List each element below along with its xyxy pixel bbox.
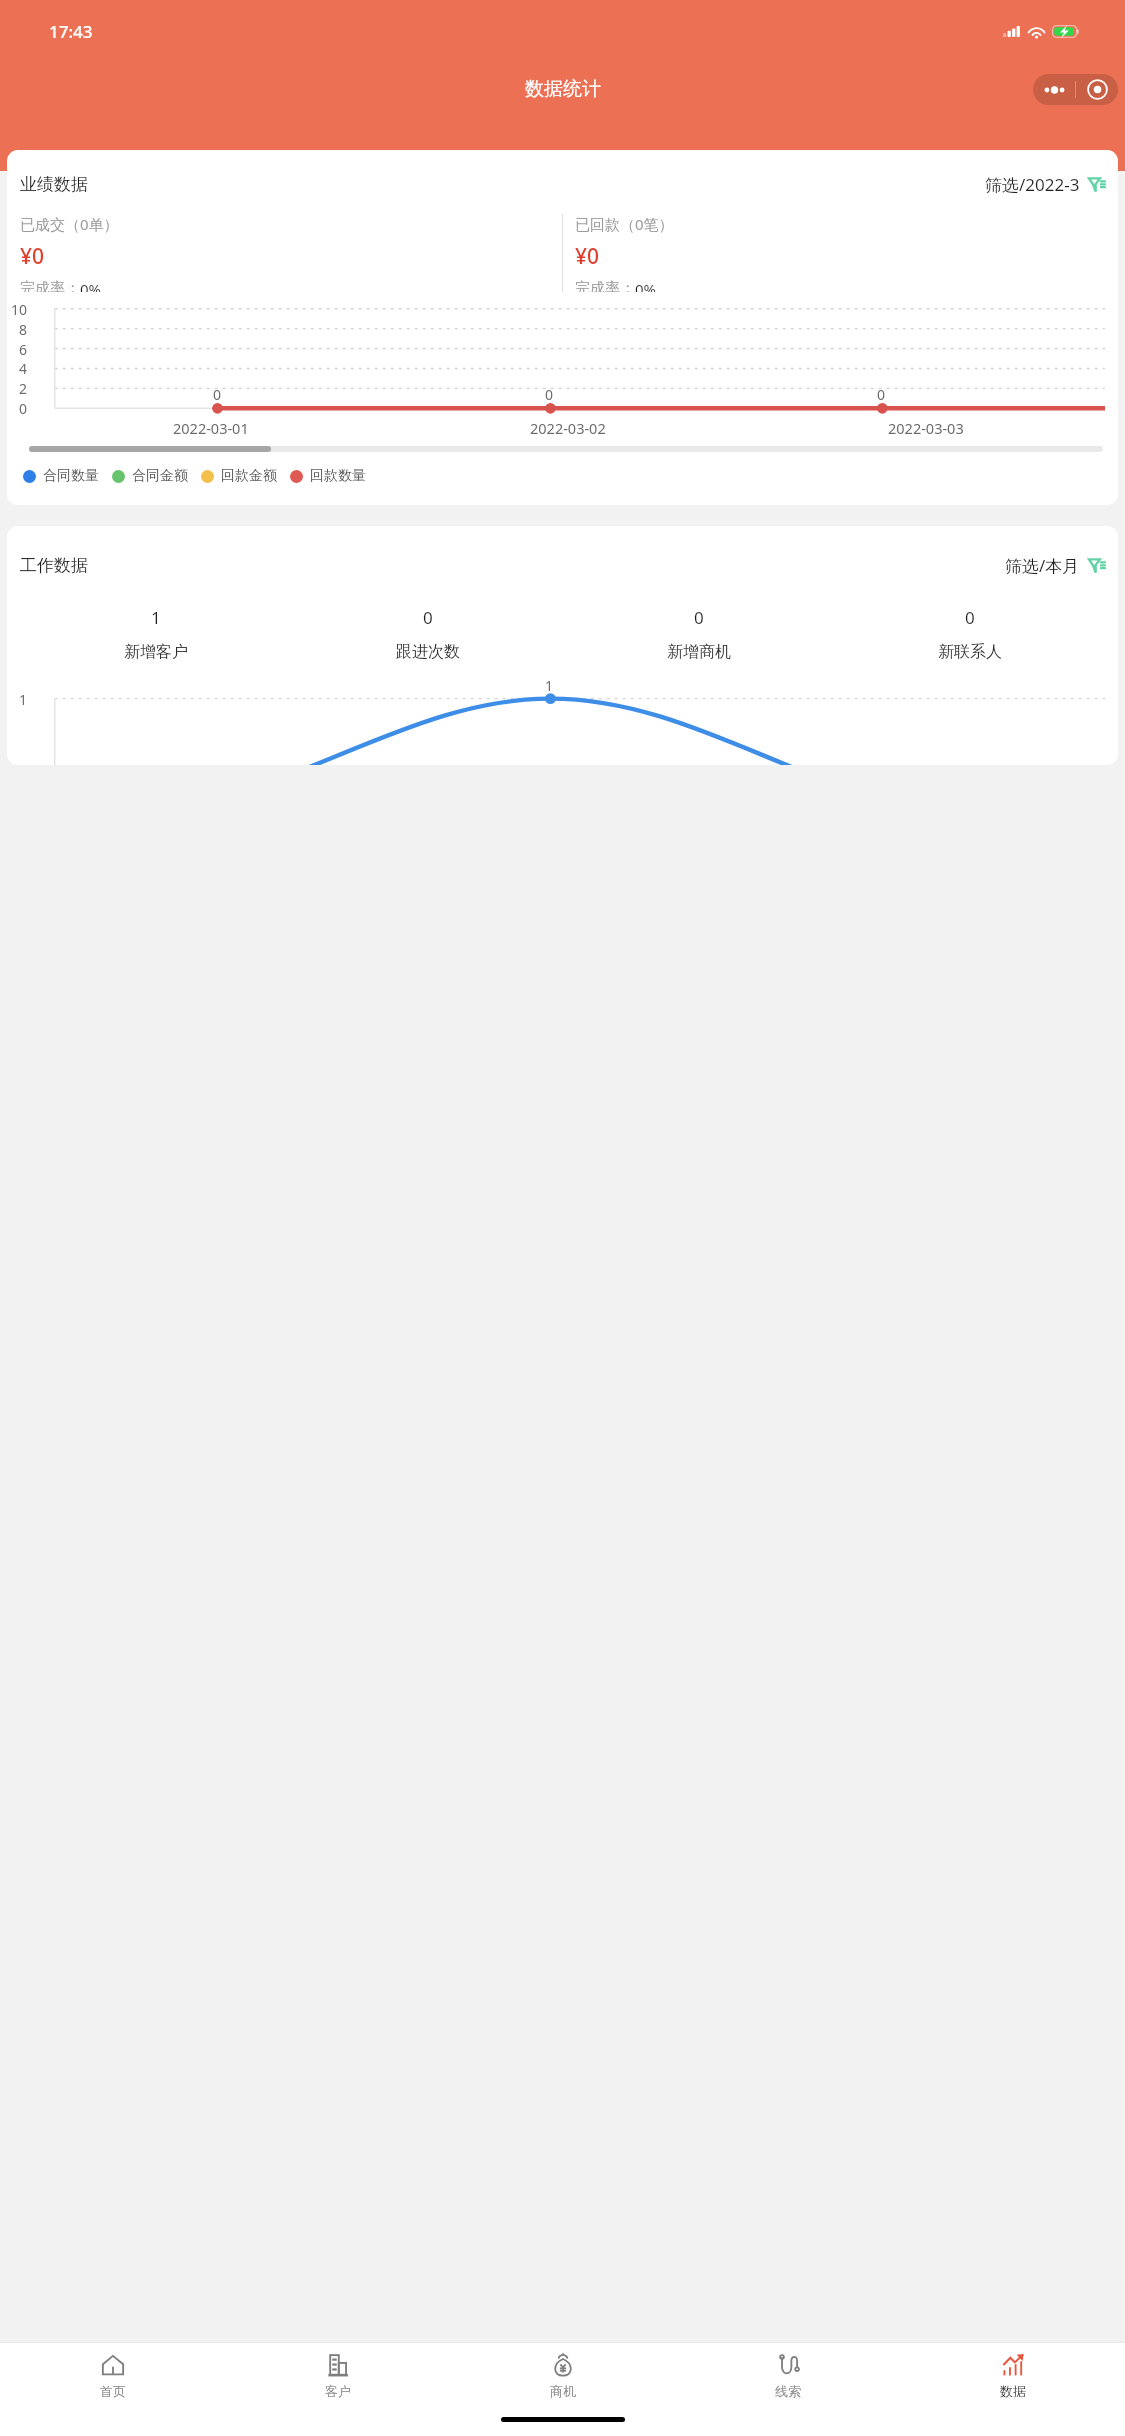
staticText: 数据 bbox=[1000, 2383, 1026, 2399]
staticText: 新联系人 bbox=[938, 642, 1002, 662]
button[interactable]: 线索 bbox=[675, 2343, 900, 2406]
button[interactable]: 首页 bbox=[0, 2343, 225, 2406]
staticText: 新增商机 bbox=[667, 642, 731, 662]
staticText: 完成率： bbox=[575, 279, 635, 292]
staticText: 4 bbox=[19, 359, 28, 378]
button[interactable]: 筛选/2022-3 bbox=[985, 169, 1105, 200]
button[interactable]: 合同数量 bbox=[23, 467, 99, 485]
staticText: 已成交（0单） bbox=[20, 214, 119, 234]
staticText: 商机 bbox=[550, 2383, 576, 2399]
staticText: 跟进次数 bbox=[396, 642, 460, 662]
staticText: 1 bbox=[19, 690, 28, 709]
staticText: 已回款（0笔） bbox=[575, 214, 674, 234]
staticText: 0 bbox=[423, 606, 433, 629]
staticText: 17:43 bbox=[49, 20, 93, 43]
staticText: 筛选/本月 bbox=[1005, 554, 1080, 577]
button[interactable]: 回款数量 bbox=[290, 467, 366, 485]
staticText: 0% bbox=[635, 279, 657, 292]
button[interactable]: 合同金额 bbox=[112, 467, 188, 485]
button[interactable]: More options and Home bbox=[1033, 74, 1118, 105]
staticText: ¥0 bbox=[575, 242, 600, 271]
staticText: 0 bbox=[545, 385, 554, 404]
staticText: 新增客户 bbox=[124, 642, 188, 662]
staticText: 完成率： bbox=[20, 279, 80, 292]
staticText: 0% bbox=[80, 279, 102, 292]
staticText: 1 bbox=[151, 606, 161, 629]
staticText: 0 bbox=[19, 399, 28, 418]
staticText: 合同数量 bbox=[43, 467, 99, 485]
button[interactable]: 筛选/本月 bbox=[1005, 550, 1105, 581]
staticText: 0 bbox=[213, 385, 222, 404]
staticText: 6 bbox=[19, 340, 28, 359]
staticText: 筛选/2022-3 bbox=[985, 173, 1080, 196]
button[interactable]: 0 bbox=[563, 606, 834, 662]
button[interactable]: 客户 bbox=[225, 2343, 450, 2406]
staticText: 回款数量 bbox=[310, 467, 366, 485]
staticText: 业绩数据 bbox=[20, 174, 88, 195]
staticText: 0 bbox=[694, 606, 704, 629]
staticText: 数据统计 bbox=[525, 77, 601, 101]
button[interactable]: 0 bbox=[834, 606, 1105, 662]
staticText: 首页 bbox=[100, 2383, 126, 2399]
staticText: 2022-03-01 bbox=[173, 418, 249, 438]
button[interactable]: 0 bbox=[292, 606, 563, 662]
staticText: 10 bbox=[11, 300, 28, 319]
staticText: 回款金额 bbox=[221, 467, 277, 485]
staticText: 线索 bbox=[775, 2383, 801, 2399]
staticText: 2 bbox=[19, 379, 28, 398]
staticText: 工作数据 bbox=[20, 555, 88, 576]
staticText: 客户 bbox=[325, 2383, 351, 2399]
staticText: 8 bbox=[19, 320, 28, 339]
button[interactable]: 数据 bbox=[900, 2343, 1125, 2406]
button[interactable]: 1 bbox=[20, 606, 292, 662]
staticText: 合同金额 bbox=[132, 467, 188, 485]
staticText: ¥0 bbox=[20, 242, 45, 271]
staticText: 1 bbox=[545, 676, 554, 695]
staticText: 0 bbox=[877, 385, 886, 404]
staticText: 2022-03-02 bbox=[530, 418, 606, 438]
staticText: 0 bbox=[965, 606, 975, 629]
button[interactable]: 回款金额 bbox=[201, 467, 277, 485]
button[interactable]: 商机 bbox=[450, 2343, 675, 2406]
staticText: 2022-03-03 bbox=[888, 418, 964, 438]
